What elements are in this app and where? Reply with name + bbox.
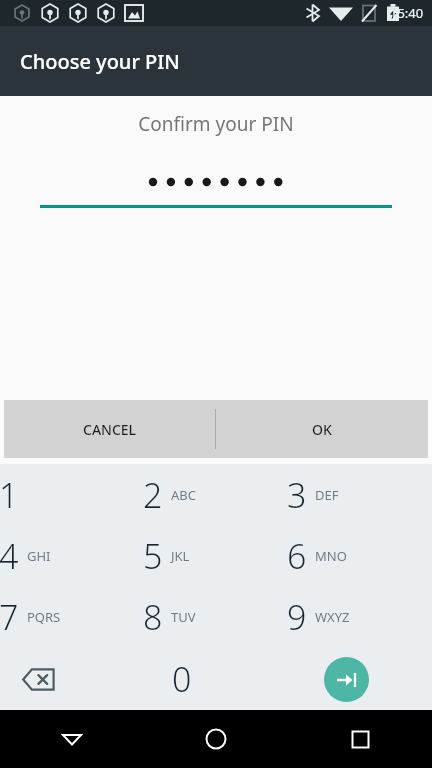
staticText: CANCEL xyxy=(83,420,137,439)
button[interactable]: CANCEL xyxy=(4,400,215,458)
staticText: OK xyxy=(312,420,332,439)
button[interactable]: Backspace xyxy=(0,648,144,710)
button[interactable]: 1 xyxy=(0,464,144,525)
button[interactable]: 8 xyxy=(144,586,288,648)
button[interactable]: Recents xyxy=(288,710,432,768)
staticText: MNO xyxy=(315,547,347,565)
button[interactable]: OK xyxy=(216,400,428,458)
staticText: 6 xyxy=(287,533,307,579)
staticText: DEF xyxy=(315,486,339,504)
button[interactable]: Home xyxy=(144,710,288,768)
staticText: JKL xyxy=(171,547,190,565)
staticText: 1 xyxy=(0,472,19,518)
other: Enter xyxy=(324,657,369,702)
staticText: ABC xyxy=(171,486,196,504)
staticText: 2 xyxy=(143,472,163,518)
button[interactable]: Back xyxy=(0,710,144,768)
staticText: 0 xyxy=(172,656,192,702)
staticText: 8 xyxy=(143,594,163,640)
button[interactable]: 3 xyxy=(288,464,432,525)
staticText: PQRS xyxy=(27,608,61,626)
staticText: 4 xyxy=(0,533,19,579)
staticText: TUV xyxy=(171,608,196,626)
button[interactable]: Enter xyxy=(288,648,432,710)
staticText: 9 xyxy=(287,594,307,640)
staticText: 5 xyxy=(143,533,163,579)
staticText: GHI xyxy=(27,547,51,565)
staticText: WXYZ xyxy=(315,608,350,626)
staticText: 15:40 xyxy=(390,4,424,22)
button[interactable]: 4 xyxy=(0,525,144,586)
staticText: 7 xyxy=(0,594,19,640)
button[interactable]: 0 xyxy=(144,648,288,710)
staticText: Confirm your PIN xyxy=(0,111,432,137)
button[interactable]: 7 xyxy=(0,586,144,648)
button[interactable]: 9 xyxy=(288,586,432,648)
button[interactable]: 5 xyxy=(144,525,288,586)
staticText: Choose your PIN xyxy=(20,48,180,75)
button[interactable]: 2 xyxy=(144,464,288,525)
staticText: 3 xyxy=(287,472,307,518)
button[interactable]: 6 xyxy=(288,525,432,586)
